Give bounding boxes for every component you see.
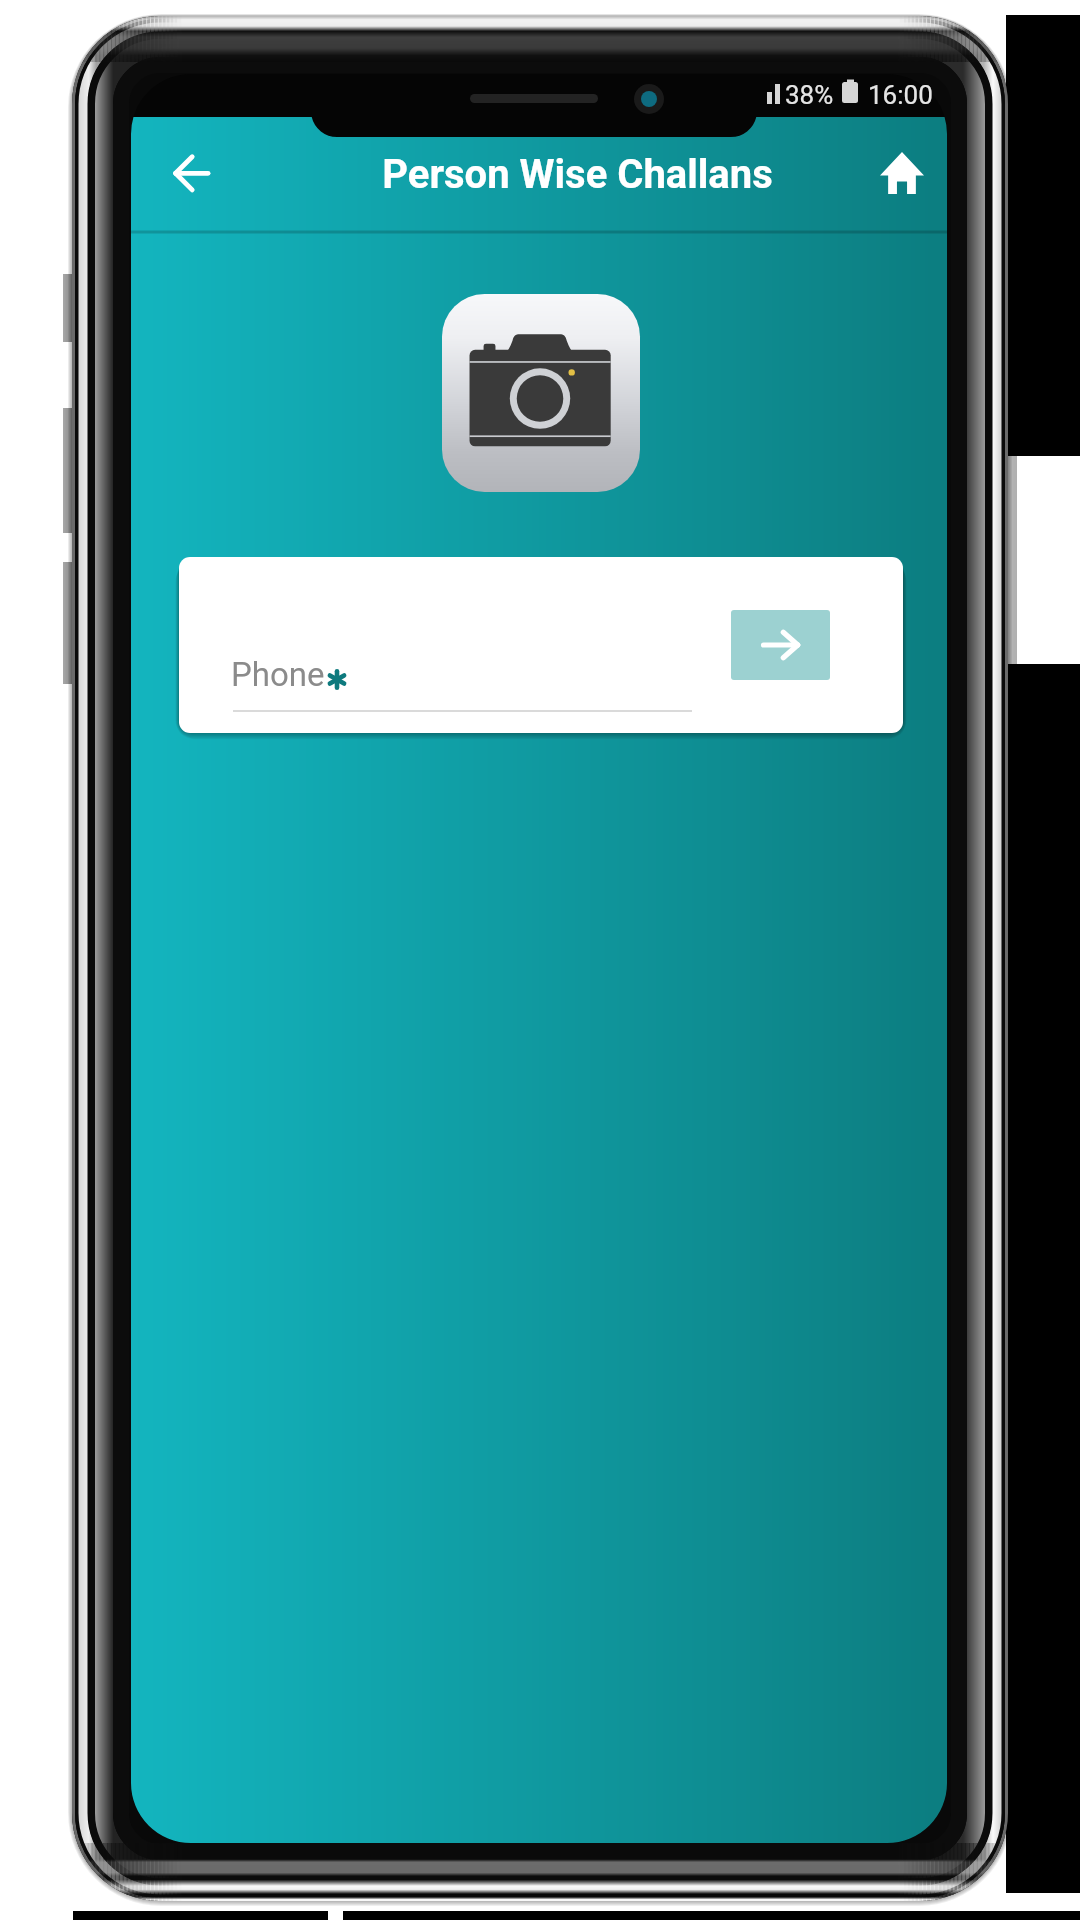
staticText: 16:00 [868,80,933,110]
button[interactable]: Back [145,127,237,219]
button[interactable]: Submit [731,610,830,680]
staticText: Person Wise Challans [382,151,773,198]
button[interactable]: Home [858,129,946,217]
staticText: Phone [231,655,325,694]
staticText: 38% [785,80,834,110]
